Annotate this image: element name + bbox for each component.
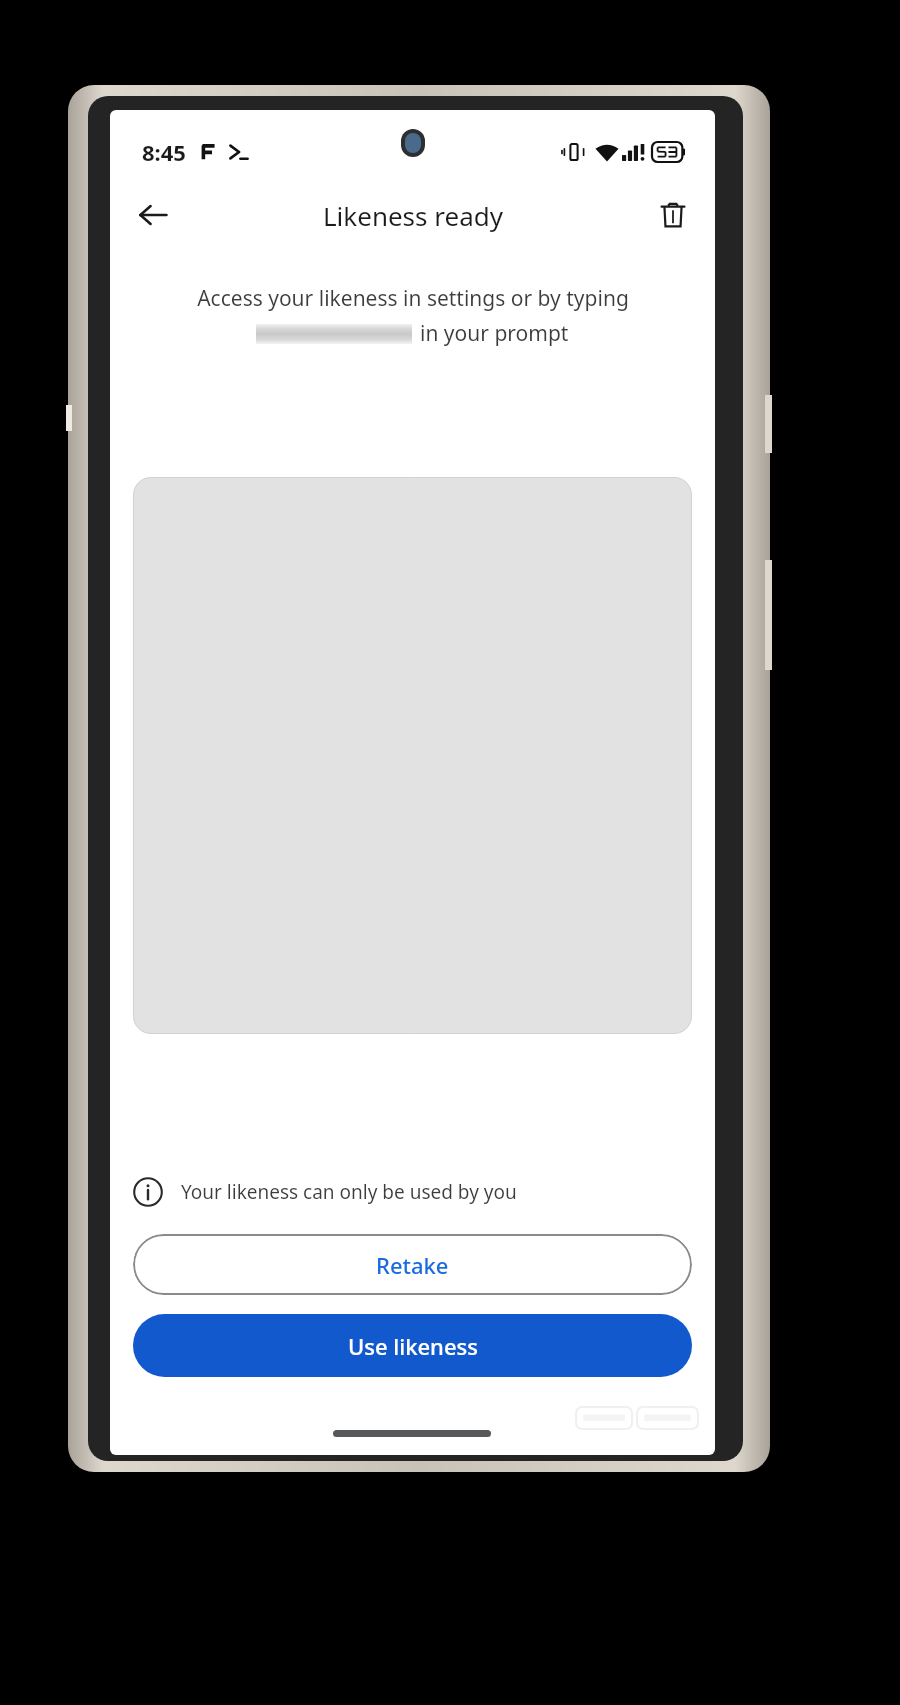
button[interactable]: Retake [133,1234,692,1295]
staticText: Access your likeness in settings or by t… [197,284,629,313]
staticText: Likeness ready [323,198,503,233]
staticText: in your prompt [420,319,569,348]
button[interactable]: Back [122,184,184,246]
staticText: Your likeness can only be used by you [181,1179,517,1205]
button[interactable]: Use likeness [133,1314,692,1377]
staticText: Use likeness [348,1331,478,1361]
button[interactable]: Delete [642,184,704,246]
staticText: 8:45 [142,137,186,167]
staticText: Retake [376,1250,449,1280]
